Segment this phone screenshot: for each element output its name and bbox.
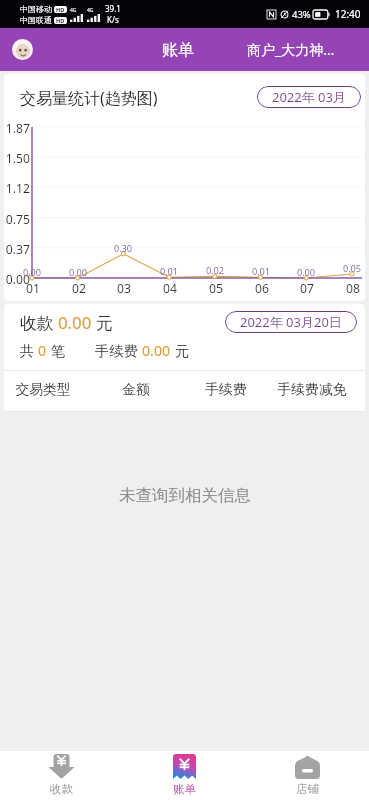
staticText: 0.30: [111, 242, 135, 255]
staticText: 4G: [70, 7, 77, 14]
staticText: 4G: [87, 7, 94, 14]
button[interactable]: 账单: [157, 36, 199, 64]
staticText: 手续费减免: [272, 381, 352, 398]
staticText: 0.00: [20, 266, 44, 279]
button[interactable]: 收款: [0, 751, 123, 796]
staticText: 0.37: [4, 241, 30, 258]
staticText: 0.00: [66, 266, 90, 279]
button[interactable]: 2022年 03月: [257, 86, 361, 108]
staticText: 0: [38, 341, 47, 360]
staticText: 交易量统计(趋势图): [20, 87, 158, 109]
button[interactable]: Profile avatar: [12, 39, 33, 60]
staticText: 1.12: [4, 180, 30, 197]
staticText: 商户_大力神…: [247, 40, 335, 59]
staticText: 0.00: [58, 311, 92, 334]
staticText: 08: [341, 280, 365, 297]
staticText: 02: [67, 280, 91, 297]
staticText: HD: [56, 6, 65, 13]
button[interactable]: 店铺: [246, 751, 369, 796]
staticText: HD: [56, 17, 65, 24]
staticText: 账单: [173, 782, 196, 796]
staticText: K/s: [107, 14, 119, 25]
button[interactable]: 商户_大力神…: [242, 36, 340, 63]
staticText: 手续费: [194, 381, 258, 398]
staticText: 0.01: [157, 265, 181, 278]
staticText: 1.87: [4, 120, 30, 137]
staticText: 0.00: [294, 266, 318, 279]
staticText: 共: [20, 341, 38, 360]
staticText: 中国移动: [20, 4, 52, 14]
staticText: 0.75: [4, 211, 30, 228]
staticText: 元: [92, 311, 114, 334]
staticText: 未查询到相关信息: [119, 485, 251, 506]
button[interactable]: 2022年 03月20日: [225, 311, 357, 333]
staticText: 笔: [47, 341, 65, 360]
staticText: 0.01: [249, 265, 273, 278]
staticText: 06: [250, 280, 274, 297]
staticText: 元: [171, 341, 189, 360]
staticText: 07: [295, 280, 319, 297]
staticText: 手续费: [95, 341, 142, 360]
staticText: 店铺: [296, 782, 319, 796]
staticText: 12:40: [335, 7, 361, 21]
staticText: 2022年 03月: [272, 88, 346, 106]
staticText: 交易类型: [11, 381, 75, 398]
staticText: 收款: [20, 311, 58, 334]
staticText: 0.05: [340, 262, 364, 275]
staticText: 01: [21, 280, 45, 297]
staticText: 0.00: [4, 271, 30, 288]
staticText: 中国联通: [20, 15, 52, 25]
staticText: 39.1: [105, 3, 121, 14]
staticText: 账单: [162, 40, 194, 60]
staticText: 04: [158, 280, 182, 297]
staticText: 43%: [292, 8, 311, 21]
staticText: 2022年 03月20日: [240, 313, 342, 331]
button[interactable]: 账单: [123, 751, 246, 796]
staticText: 03: [112, 280, 136, 297]
staticText: 0.00: [142, 341, 171, 360]
staticText: 05: [204, 280, 228, 297]
staticText: 1.50: [4, 150, 30, 167]
staticText: 金额: [104, 381, 168, 398]
staticText: 0.02: [203, 264, 227, 277]
staticText: 收款: [50, 782, 73, 796]
